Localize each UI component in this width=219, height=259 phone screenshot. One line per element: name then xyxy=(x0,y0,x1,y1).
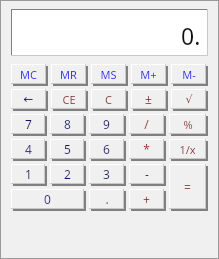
button[interactable]: 7 xyxy=(11,114,47,136)
button[interactable]: Plus minus xyxy=(131,89,168,111)
button[interactable]: M- xyxy=(171,64,208,86)
staticText: ± xyxy=(145,91,152,107)
staticText: / xyxy=(144,116,149,132)
button[interactable]: = xyxy=(169,164,208,211)
button[interactable]: 1/x xyxy=(169,139,208,161)
staticText: 9 xyxy=(103,116,110,132)
staticText: . xyxy=(105,191,109,207)
button[interactable]: 5 xyxy=(50,139,86,161)
button[interactable]: M+ xyxy=(131,64,168,86)
staticText: = xyxy=(184,179,191,195)
button[interactable]: * xyxy=(129,139,166,161)
button[interactable]: MR xyxy=(51,64,88,86)
staticText: √ xyxy=(185,93,193,106)
staticText: CE xyxy=(62,92,76,107)
button[interactable]: MS xyxy=(91,64,128,86)
staticText: 2 xyxy=(64,166,71,182)
staticText: 5 xyxy=(64,141,71,157)
button[interactable]: 8 xyxy=(50,114,86,136)
staticText: 8 xyxy=(64,116,71,132)
button[interactable]: Square root xyxy=(171,89,208,111)
staticText: 0 xyxy=(44,191,51,207)
button[interactable]: 9 xyxy=(89,114,126,136)
staticText: C xyxy=(105,92,112,107)
button[interactable]: + xyxy=(129,189,166,211)
button[interactable]: 0 xyxy=(11,189,86,211)
staticText: 1 xyxy=(25,166,32,182)
staticText: 6 xyxy=(103,141,110,157)
staticText: MS xyxy=(100,67,117,82)
staticText: MC xyxy=(20,67,37,82)
staticText: MR xyxy=(60,67,77,82)
button[interactable]: MC xyxy=(11,64,48,86)
staticText: 1/x xyxy=(179,142,196,157)
button[interactable]: / xyxy=(129,114,166,136)
button[interactable]: 1 xyxy=(11,164,47,186)
button[interactable]: % xyxy=(169,114,208,136)
staticText: % xyxy=(183,117,193,132)
button[interactable]: - xyxy=(129,164,166,186)
button[interactable]: 2 xyxy=(50,164,86,186)
staticText: - xyxy=(145,166,149,182)
button[interactable]: CE xyxy=(51,89,88,111)
staticText: M+ xyxy=(140,67,157,82)
button[interactable]: . xyxy=(89,189,126,211)
staticText: * xyxy=(143,141,150,157)
button[interactable]: 3 xyxy=(89,164,126,186)
staticText: 0. xyxy=(181,20,201,51)
staticText: ← xyxy=(23,92,34,106)
staticText: + xyxy=(143,191,150,207)
button[interactable]: 4 xyxy=(11,139,47,161)
staticText: 4 xyxy=(25,141,32,157)
staticText: 3 xyxy=(103,166,110,182)
button[interactable]: 6 xyxy=(89,139,126,161)
button[interactable]: Backspace xyxy=(11,89,48,111)
staticText: M- xyxy=(182,67,196,82)
staticText: 7 xyxy=(25,116,32,132)
button[interactable]: C xyxy=(91,89,128,111)
